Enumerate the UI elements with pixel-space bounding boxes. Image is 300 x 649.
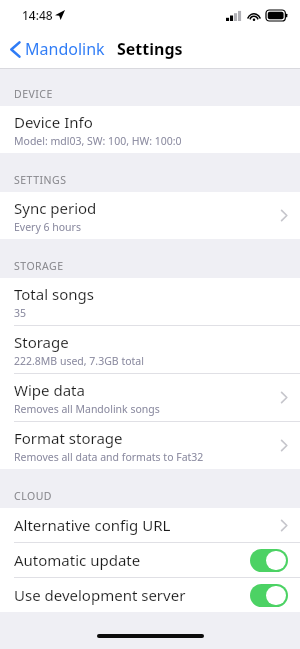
- button[interactable]: Sync period: [0, 192, 300, 239]
- staticText: Mandolink: [25, 38, 105, 60]
- button[interactable]: Format storage: [0, 422, 300, 469]
- button[interactable]: Wipe data: [0, 374, 300, 421]
- staticText: Wipe data: [14, 380, 85, 400]
- other: Toggle Use development server: [250, 584, 288, 607]
- other: Toggle Automatic update: [250, 549, 288, 572]
- staticText: Removes all Mandolink songs: [14, 402, 160, 416]
- button[interactable]: Alternative config URL: [0, 508, 300, 542]
- staticText: CLOUD: [14, 489, 52, 503]
- button[interactable]: Device Info: [0, 106, 300, 153]
- staticText: Automatic update: [14, 550, 250, 570]
- staticText: Settings: [117, 38, 183, 60]
- staticText: Model: mdl03, SW: 100, HW: 100:0: [14, 134, 182, 148]
- staticText: Every 6 hours: [14, 220, 81, 234]
- other: Open: [280, 209, 288, 222]
- staticText: STORAGE: [14, 259, 64, 273]
- other: Open: [280, 391, 288, 404]
- button[interactable]: Automatic update: [0, 543, 300, 577]
- staticText: Use development server: [14, 585, 250, 605]
- staticText: 35: [14, 306, 27, 320]
- staticText: Storage: [14, 332, 69, 352]
- staticText: 222.8MB used, 7.3GB total: [14, 354, 144, 368]
- staticText: SETTINGS: [14, 173, 67, 187]
- button[interactable]: Use development server: [0, 578, 300, 612]
- other: Open: [280, 439, 288, 452]
- staticText: Alternative config URL: [14, 515, 280, 535]
- staticText: Format storage: [14, 428, 123, 448]
- button[interactable]: Mandolink: [8, 34, 107, 64]
- staticText: Removes all data and formats to Fat32: [14, 450, 204, 464]
- button[interactable]: Total songs: [0, 278, 300, 325]
- staticText: DEVICE: [14, 87, 53, 101]
- staticText: 14:48: [22, 7, 53, 23]
- staticText: Total songs: [14, 284, 94, 304]
- other: Open: [280, 519, 288, 532]
- staticText: Sync period: [14, 198, 97, 218]
- staticText: Device Info: [14, 112, 93, 132]
- button[interactable]: Storage: [0, 326, 300, 373]
